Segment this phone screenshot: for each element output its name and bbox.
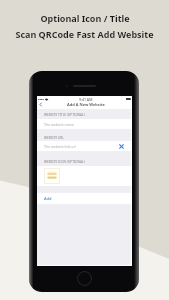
button[interactable]: Add [37,193,132,204]
staticText: WEBSITE TITLE (OPTIONAL) [44,113,85,117]
staticText: Scan QRCode Fast Add Website [15,28,154,40]
button[interactable]: Clear [119,144,124,149]
staticText: 9:41 AM [79,97,93,102]
staticText: The website link url [44,144,76,149]
button[interactable]: Back [38,102,43,107]
staticText: WEBSITE ICON (OPTIONAL) [44,160,85,164]
staticText: Add A New Website [67,102,105,107]
staticText: Optional Icon / Title [40,12,130,24]
staticText: WEBSITE URL [44,136,64,140]
staticText: The website name [44,122,74,127]
staticText: Add [44,196,52,201]
button[interactable]: Choose website icon [44,168,60,184]
